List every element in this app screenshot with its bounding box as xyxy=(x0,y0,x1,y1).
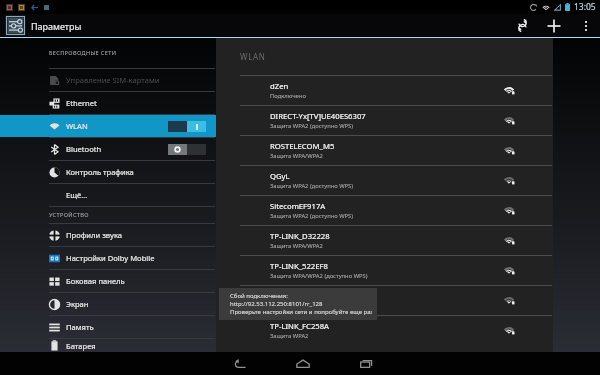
button[interactable]: dZen xyxy=(216,76,553,105)
button[interactable]: Экран xyxy=(0,293,216,315)
staticText: 13:05 xyxy=(574,1,596,13)
staticText: Защита WPA2 (доступно WPS) xyxy=(270,122,353,130)
staticText: Подключено xyxy=(270,92,306,100)
staticText: Проверьте настройки сети и попробуйте ещ… xyxy=(230,308,372,316)
staticText: Контроль трафика xyxy=(66,167,134,177)
staticText: ASUS_X5 xyxy=(270,291,302,301)
button[interactable]: Боковая панель xyxy=(0,270,216,292)
staticText: Батарея xyxy=(66,341,96,351)
staticText: Память xyxy=(66,322,94,332)
button[interactable]: Add network xyxy=(542,14,565,37)
staticText: http://92.53.112.250:8101/rr_128 xyxy=(230,300,323,308)
staticText: DIRECT-Yx[TV]UE40ES6307 xyxy=(270,111,366,121)
staticText: Параметры xyxy=(31,20,82,32)
button[interactable]: DIRECT-Yx[TV]UE40ES6307 xyxy=(216,106,553,135)
staticText: Боковая панель xyxy=(66,276,125,286)
staticText: QGyL xyxy=(270,171,290,181)
button[interactable]: Recents xyxy=(354,352,378,375)
button[interactable]: TP-LINK_D32228 xyxy=(216,226,553,255)
staticText: ROSTELECOM_M5 xyxy=(270,141,335,151)
button[interactable]: Ethernet xyxy=(0,92,216,114)
button[interactable]: Управление SIM-картами xyxy=(0,69,216,91)
staticText: УСТРОЙСТВО xyxy=(49,211,89,219)
staticText: Защита WPA2 (доступно WPS) xyxy=(270,212,353,220)
button[interactable]: Settings xyxy=(6,16,25,35)
button[interactable]: Toggle xyxy=(168,121,206,132)
button[interactable]: Back xyxy=(228,352,252,375)
button[interactable]: Scan xyxy=(511,14,534,37)
staticText: Защита WPA/WPA2 xyxy=(270,242,323,250)
staticText: WLAN xyxy=(240,51,266,62)
staticText: БЕСПРОВОДНЫЕ СЕТИ xyxy=(49,49,117,57)
button[interactable]: TP-LINK_522EF8 xyxy=(216,256,553,285)
button[interactable]: Память xyxy=(0,316,216,338)
button[interactable]: QGyL xyxy=(216,166,553,195)
button[interactable]: TP-LINK_FC258A xyxy=(216,316,553,345)
staticText: Bluetooth xyxy=(66,144,102,154)
staticText: dZen xyxy=(270,81,289,91)
button[interactable]: Профили звука xyxy=(0,224,216,246)
button[interactable]: SitecomEF917A xyxy=(216,196,553,225)
button[interactable]: Настройки Dolby Mobile xyxy=(0,247,216,269)
staticText: SitecomEF917A xyxy=(270,201,326,211)
staticText: Ещё... xyxy=(66,190,88,200)
staticText: Экран xyxy=(66,299,89,309)
staticText: Управление SIM-картами xyxy=(66,75,160,85)
staticText: TP-LINK_522EF8 xyxy=(270,261,328,271)
staticText: WLAN xyxy=(66,121,88,131)
button[interactable]: ASUS_X5 xyxy=(216,286,553,315)
button[interactable]: Bluetooth xyxy=(0,138,216,160)
staticText: Сбой подключения: xyxy=(230,292,288,300)
staticText: TP-LINK_D32228 xyxy=(270,231,330,241)
staticText: Защита WPA/WPA2 xyxy=(270,152,323,160)
staticText: Ethernet xyxy=(66,98,97,108)
button[interactable]: Контроль трафика xyxy=(0,161,216,183)
staticText: Настройки Dolby Mobile xyxy=(66,253,155,263)
staticText: Защита WPA/WPA2 (доступно WPS) xyxy=(270,272,368,280)
staticText: Защита WPA2 xyxy=(270,332,309,340)
staticText: TP-LINK_FC258A xyxy=(270,321,330,331)
button[interactable]: Батарея xyxy=(0,339,216,352)
button[interactable]: More options xyxy=(574,14,597,37)
button[interactable]: Ещё... xyxy=(0,184,216,206)
button[interactable]: Home xyxy=(291,352,315,375)
button[interactable]: WLAN xyxy=(0,115,216,137)
staticText: Защита WPA2 xyxy=(270,302,309,310)
staticText: Профили звука xyxy=(66,230,123,240)
staticText: Защита WPA2 (доступно WPS) xyxy=(270,182,353,190)
button[interactable]: Toggle xyxy=(168,144,206,155)
button[interactable]: ROSTELECOM_M5 xyxy=(216,136,553,165)
